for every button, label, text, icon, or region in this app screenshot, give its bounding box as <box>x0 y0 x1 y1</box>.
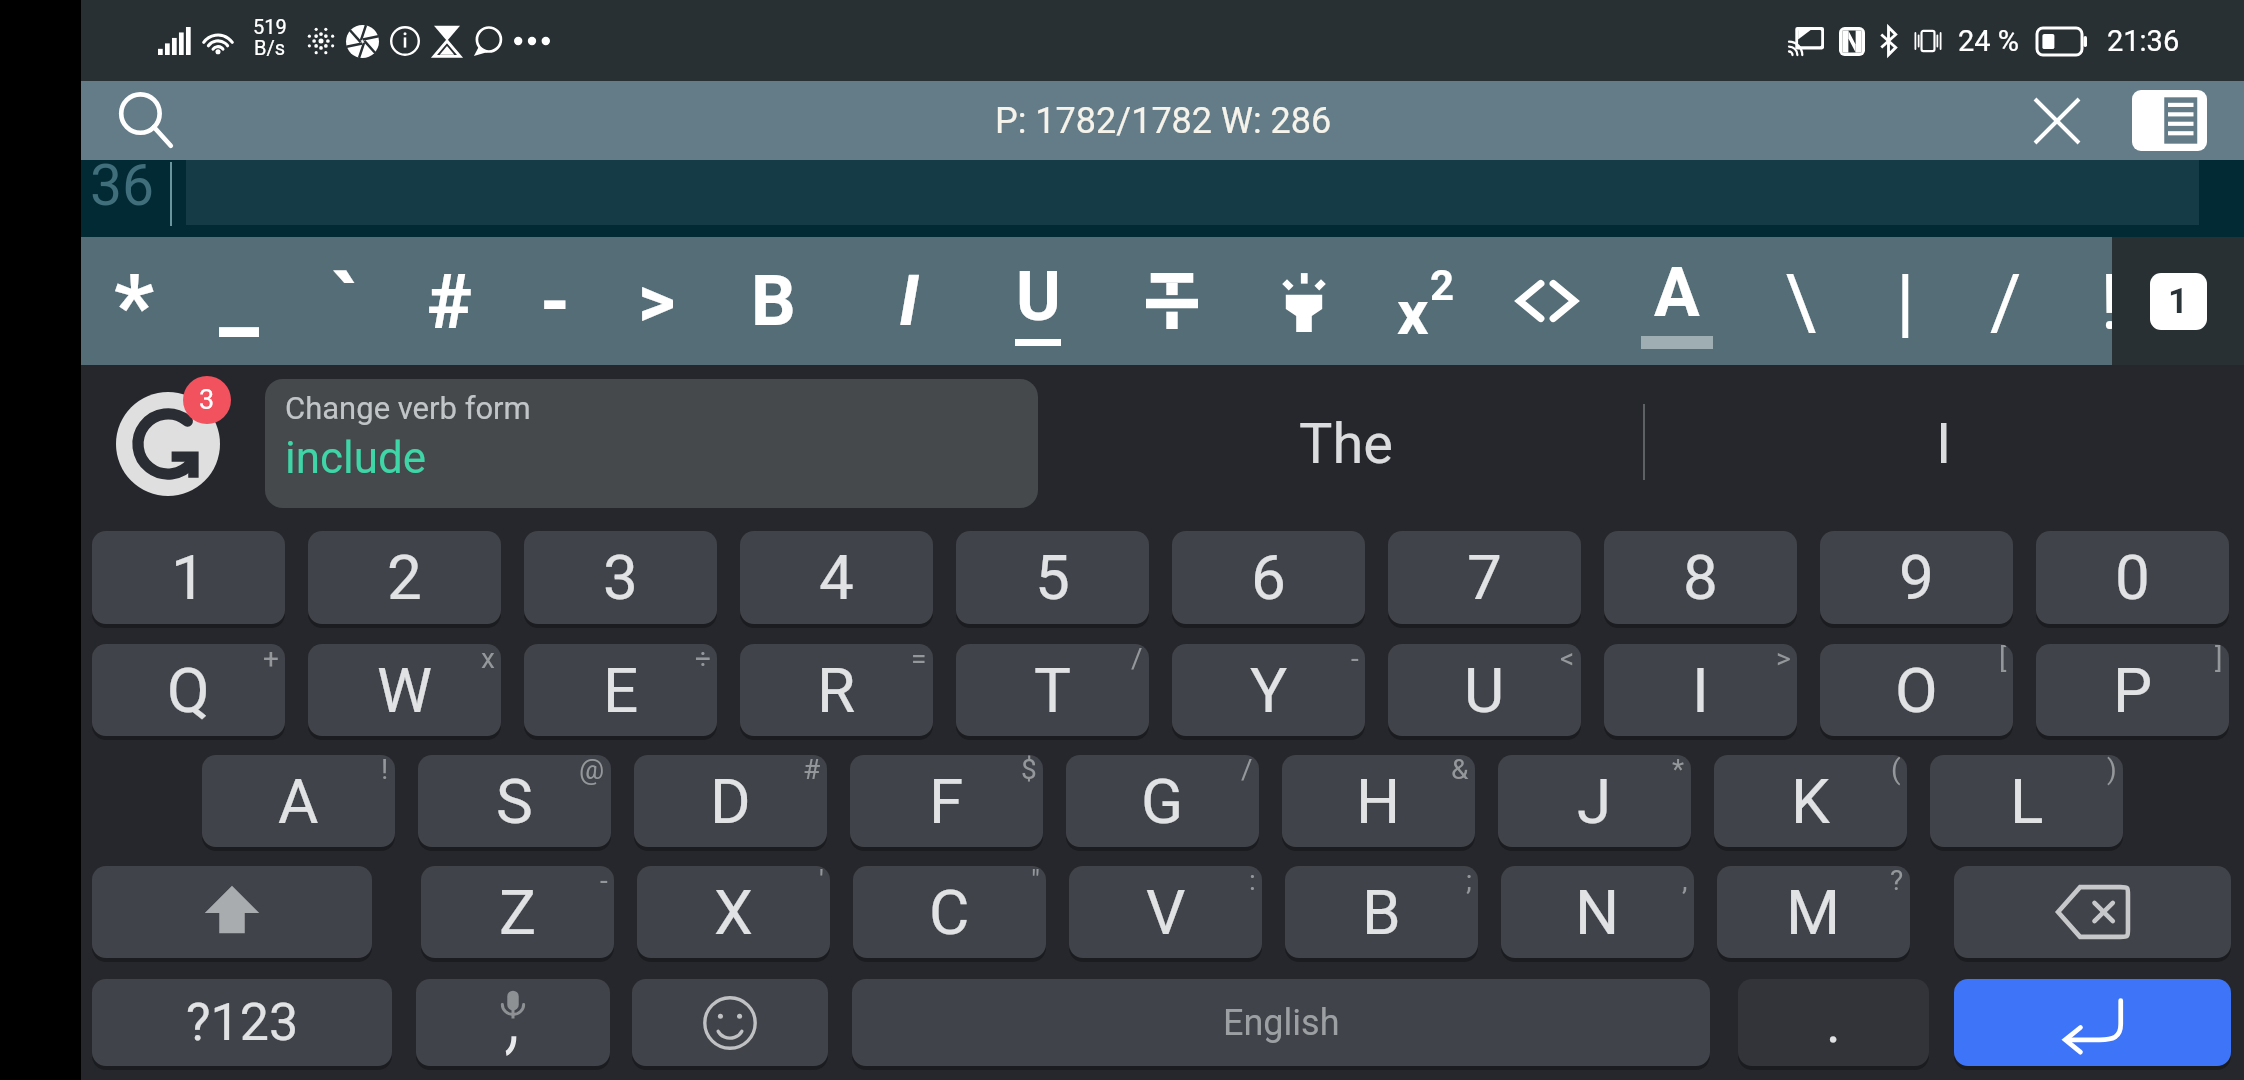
button[interactable]: L <box>1930 755 2123 847</box>
button[interactable]: Superscript <box>1373 237 1477 365</box>
staticText: - <box>540 257 570 346</box>
button[interactable]: T <box>956 644 1149 736</box>
button[interactable]: N <box>1501 866 1694 958</box>
button[interactable]: Exclamation <box>2058 237 2112 365</box>
button[interactable]: 3 <box>524 531 717 624</box>
staticText: Y <box>1250 654 1288 727</box>
button[interactable]: 8 <box>1604 531 1797 624</box>
button[interactable]: Backspace <box>1954 866 2231 958</box>
button[interactable]: Close <box>2002 81 2112 160</box>
button[interactable]: G <box>1066 755 1259 847</box>
button[interactable]: Backtick <box>293 237 397 365</box>
button[interactable]: Bold <box>721 237 825 365</box>
staticText: 519 <box>253 15 287 38</box>
button[interactable]: P <box>2036 644 2229 736</box>
staticText: 3 <box>603 541 638 614</box>
staticText: & <box>1451 755 1469 786</box>
button[interactable]: The <box>1186 386 1506 502</box>
staticText: X <box>714 876 753 949</box>
button[interactable]: D <box>634 755 827 847</box>
button[interactable]: I <box>1784 386 2104 502</box>
button[interactable]: Shift <box>92 866 372 958</box>
button[interactable]: C <box>853 866 1046 958</box>
button[interactable]: J <box>1498 755 1691 847</box>
staticText: 36 <box>90 152 155 219</box>
staticText: Q <box>167 654 210 727</box>
staticText: : <box>1249 866 1256 897</box>
button[interactable]: W <box>308 644 501 736</box>
button[interactable]: U <box>1388 644 1581 736</box>
button[interactable]: Z <box>421 866 614 958</box>
button[interactable]: Pipe <box>1853 237 1957 365</box>
button[interactable]: X <box>637 866 830 958</box>
button[interactable]: Page 1 <box>2123 237 2233 365</box>
button[interactable]: Search <box>101 81 191 160</box>
staticText: ` <box>331 255 359 353</box>
button[interactable]: Toggle reading view <box>2114 81 2224 160</box>
staticText: B/s <box>254 36 286 59</box>
button[interactable]: 2 <box>308 531 501 624</box>
staticText: I <box>1936 411 1952 477</box>
button[interactable]: Quote <box>605 237 709 365</box>
staticText: A <box>278 765 319 838</box>
staticText: B <box>1362 876 1401 949</box>
button[interactable]: Enter <box>1954 979 2231 1066</box>
button[interactable]: V <box>1069 866 1262 958</box>
button[interactable]: 1 <box>92 531 285 624</box>
button[interactable]: Y <box>1172 644 1365 736</box>
button[interactable]: Italic <box>857 237 961 365</box>
button[interactable]: 7 <box>1388 531 1581 624</box>
button[interactable]: Q <box>92 644 285 736</box>
button[interactable]: Heading <box>398 237 502 365</box>
button[interactable]: I <box>1604 644 1797 736</box>
button[interactable]: . <box>1738 979 1929 1066</box>
button[interactable]: B <box>1285 866 1478 958</box>
staticText: U <box>1464 654 1505 727</box>
staticText: W <box>377 654 433 727</box>
button[interactable]: R <box>740 644 933 736</box>
button[interactable]: H <box>1282 755 1475 847</box>
staticText: , <box>1682 866 1688 897</box>
button[interactable]: A <box>202 755 395 847</box>
staticText: ; <box>1466 866 1472 897</box>
staticText: - <box>600 866 608 897</box>
button[interactable]: F <box>850 755 1043 847</box>
button[interactable]: Backslash <box>1749 237 1853 365</box>
staticText: / <box>1241 755 1253 786</box>
staticText: English <box>1223 1002 1340 1044</box>
button[interactable]: 5 <box>956 531 1149 624</box>
staticText: J <box>1577 765 1612 838</box>
staticText: E <box>603 654 639 727</box>
button[interactable]: Dash <box>503 237 607 365</box>
button[interactable]: Highlight <box>1252 237 1356 365</box>
button[interactable]: Asterisk <box>82 237 186 365</box>
button[interactable]: Strikethrough <box>1120 237 1224 365</box>
button[interactable]: Emoji <box>632 979 828 1066</box>
button[interactable]: Underscore <box>187 237 291 365</box>
staticText: P: 1782/1782 W: 286 <box>995 100 1332 142</box>
button[interactable]: 0 <box>2036 531 2229 624</box>
staticText: > <box>638 259 676 343</box>
staticText: M <box>1786 876 1841 949</box>
staticText: / <box>1131 644 1143 675</box>
button[interactable]: 9 <box>1820 531 2013 624</box>
staticText: N <box>1575 876 1620 949</box>
button[interactable]: E <box>524 644 717 736</box>
button[interactable]: 6 <box>1172 531 1365 624</box>
button[interactable]: ?123 <box>92 979 392 1066</box>
button[interactable]: Slash <box>1954 237 2058 365</box>
button[interactable]: Voice input <box>416 979 610 1066</box>
button[interactable]: Space <box>852 979 1710 1066</box>
button[interactable]: Code <box>1495 237 1599 365</box>
button[interactable]: Underline <box>986 237 1090 365</box>
button[interactable]: S <box>418 755 611 847</box>
button[interactable]: 4 <box>740 531 933 624</box>
staticText: P <box>2113 654 2153 727</box>
button[interactable]: Grammarly <box>116 392 220 496</box>
button[interactable]: Change verb form <box>265 379 1038 508</box>
button[interactable]: M <box>1717 866 1910 958</box>
staticText: O <box>1895 654 1938 727</box>
button[interactable]: O <box>1820 644 2013 736</box>
button[interactable]: K <box>1714 755 1907 847</box>
button[interactable]: Text colour <box>1625 237 1729 365</box>
